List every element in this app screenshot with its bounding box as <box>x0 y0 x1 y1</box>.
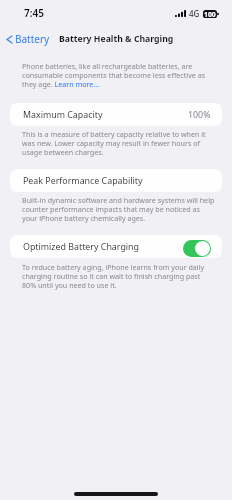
staticText: Optimized Battery Charging <box>23 241 140 253</box>
button[interactable]: Battery <box>6 32 50 46</box>
staticText: To reduce battery aging, iPhone learns f… <box>22 262 216 290</box>
staticText: 7:45 <box>24 6 44 20</box>
staticText: 100% <box>188 109 211 121</box>
button[interactable]: Maximum Capacity <box>10 103 222 126</box>
button[interactable]: Optimized Battery Charging <box>10 235 222 258</box>
staticText: Peak Performance Capability <box>23 175 143 187</box>
staticText: Maximum Capacity <box>23 109 103 121</box>
staticText: Battery Health & Charging <box>59 33 174 45</box>
staticText: Battery <box>15 32 50 46</box>
staticText: This is a measure of battery capacity re… <box>22 129 216 157</box>
staticText: 100 <box>204 10 216 18</box>
staticText: 4G <box>189 8 200 19</box>
staticText: Phone batteries, like all rechargeable b… <box>22 61 216 89</box>
button[interactable]: Optimized Battery Charging toggle <box>183 240 211 257</box>
button[interactable]: Learn more <box>55 80 99 89</box>
button[interactable]: Peak Performance Capability <box>10 169 222 192</box>
staticText: Built-in dynamic software and hardware s… <box>22 195 216 223</box>
